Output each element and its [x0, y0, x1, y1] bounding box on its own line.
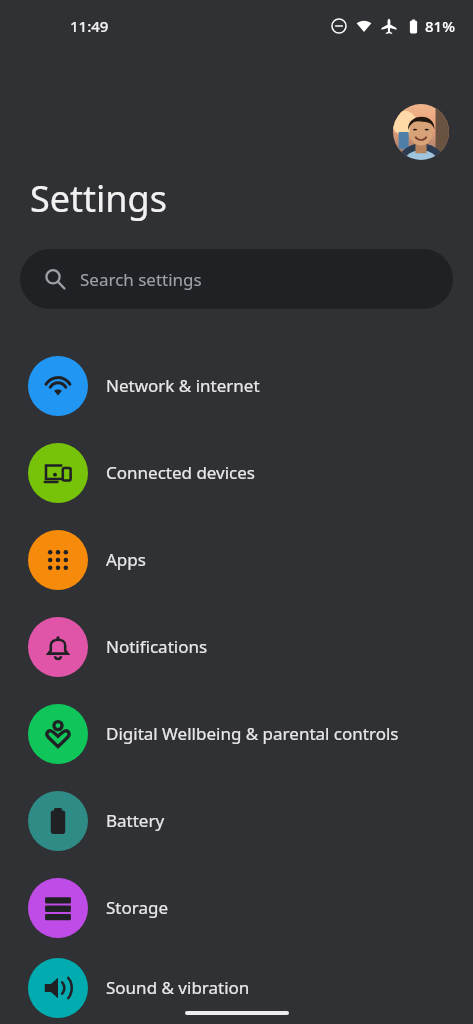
- button[interactable]: Connected devices: [0, 429, 473, 516]
- staticText: Sound & vibration: [106, 976, 250, 999]
- button[interactable]: Account profile: [393, 104, 449, 160]
- button[interactable]: Digital Wellbeing & parental controls: [0, 690, 473, 777]
- staticText: 81%: [425, 16, 455, 36]
- button[interactable]: Network & internet: [0, 342, 473, 429]
- button[interactable]: Notifications: [0, 603, 473, 690]
- button[interactable]: Search settings: [20, 249, 453, 309]
- staticText: 11:49: [70, 16, 109, 36]
- staticText: Connected devices: [106, 461, 256, 484]
- button[interactable]: Battery: [0, 777, 473, 864]
- staticText: Digital Wellbeing & parental controls: [106, 722, 399, 745]
- button[interactable]: Storage: [0, 864, 473, 951]
- staticText: Storage: [106, 896, 169, 919]
- staticText: Settings: [30, 174, 167, 223]
- staticText: Search settings: [80, 268, 202, 291]
- staticText: Apps: [106, 548, 146, 571]
- button[interactable]: Sound & vibration: [0, 951, 473, 1024]
- button[interactable]: Apps: [0, 516, 473, 603]
- staticText: Battery: [106, 809, 165, 832]
- staticText: Notifications: [106, 635, 208, 658]
- staticText: Network & internet: [106, 374, 260, 397]
